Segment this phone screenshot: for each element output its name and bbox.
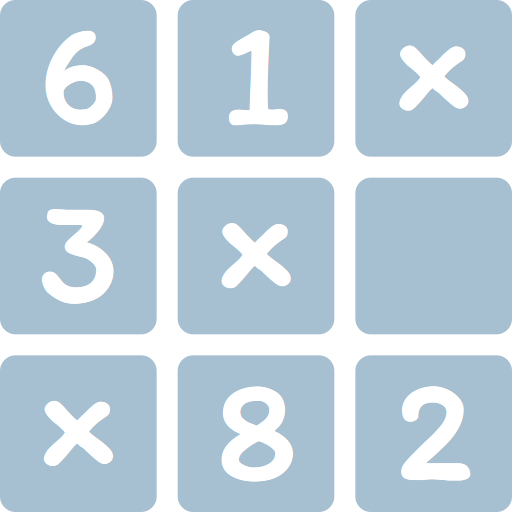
staticText: × bbox=[36, 311, 118, 512]
staticText: 6 bbox=[40, 0, 118, 161]
staticText: 3 bbox=[38, 163, 118, 339]
staticText: 6 bbox=[39, 0, 117, 161]
staticText: × bbox=[37, 311, 119, 512]
staticText: × bbox=[215, 133, 297, 334]
staticText: × bbox=[392, 0, 474, 158]
staticText: × bbox=[37, 310, 119, 512]
staticText: × bbox=[392, 0, 474, 157]
staticText: × bbox=[216, 134, 298, 335]
staticText: × bbox=[214, 134, 296, 335]
staticText: × bbox=[393, 0, 475, 157]
staticText: 2 bbox=[394, 340, 471, 512]
staticText: × bbox=[216, 134, 298, 336]
staticText: × bbox=[37, 312, 119, 512]
staticText: × bbox=[215, 135, 297, 336]
staticText: 2 bbox=[394, 339, 471, 512]
staticText: × bbox=[393, 0, 475, 159]
button[interactable]: 8 bbox=[178, 355, 334, 512]
staticText: 1 bbox=[222, 0, 290, 162]
staticText: 6 bbox=[40, 0, 118, 160]
staticText: × bbox=[215, 134, 297, 335]
staticText: × bbox=[37, 312, 119, 512]
staticText: 3 bbox=[39, 163, 119, 339]
staticText: 1 bbox=[223, 0, 291, 160]
staticText: 6 bbox=[39, 0, 117, 162]
staticText: 8 bbox=[216, 339, 296, 512]
staticText: 2 bbox=[395, 339, 472, 512]
staticText: × bbox=[214, 133, 296, 335]
staticText: × bbox=[393, 0, 475, 157]
staticText: × bbox=[38, 311, 120, 512]
staticText: 8 bbox=[215, 340, 295, 512]
staticText: 6 bbox=[38, 0, 116, 161]
staticText: 2 bbox=[396, 341, 473, 512]
button[interactable]: 3 bbox=[0, 178, 157, 334]
staticText: 8 bbox=[216, 341, 296, 512]
staticText: 1 bbox=[223, 0, 291, 161]
staticText: 8 bbox=[217, 339, 297, 512]
button[interactable]: Empty cell bbox=[355, 178, 512, 334]
staticText: 3 bbox=[38, 163, 118, 339]
staticText: × bbox=[37, 311, 119, 512]
staticText: 3 bbox=[38, 162, 118, 338]
button[interactable]: Clear bbox=[355, 0, 512, 157]
staticText: 2 bbox=[396, 340, 473, 512]
staticText: × bbox=[214, 134, 296, 336]
staticText: × bbox=[393, 0, 475, 158]
staticText: × bbox=[38, 312, 120, 512]
staticText: × bbox=[394, 0, 476, 158]
staticText: 6 bbox=[39, 0, 117, 161]
staticText: 1 bbox=[221, 0, 289, 161]
staticText: 6 bbox=[40, 0, 118, 161]
button[interactable]: 6 bbox=[0, 0, 157, 157]
staticText: 3 bbox=[38, 162, 118, 338]
staticText: × bbox=[38, 311, 120, 512]
staticText: 1 bbox=[222, 0, 290, 160]
staticText: 2 bbox=[394, 341, 471, 512]
staticText: × bbox=[392, 0, 474, 158]
staticText: 6 bbox=[39, 0, 117, 160]
staticText: 3 bbox=[38, 161, 118, 337]
staticText: 2 bbox=[395, 340, 472, 512]
staticText: 1 bbox=[221, 0, 289, 161]
staticText: 3 bbox=[39, 162, 119, 338]
staticText: 6 bbox=[39, 0, 117, 160]
staticText: 8 bbox=[215, 339, 295, 512]
staticText: 2 bbox=[395, 341, 472, 512]
button[interactable]: Clear bbox=[0, 355, 157, 512]
button[interactable]: 1 bbox=[178, 0, 334, 157]
staticText: 1 bbox=[223, 0, 291, 161]
staticText: × bbox=[216, 133, 298, 335]
staticText: 2 bbox=[396, 339, 473, 512]
button[interactable]: 2 bbox=[355, 355, 512, 512]
staticText: 3 bbox=[39, 162, 119, 338]
staticText: 8 bbox=[216, 340, 296, 512]
staticText: 8 bbox=[217, 341, 297, 512]
staticText: 8 bbox=[215, 341, 295, 512]
staticText: 3 bbox=[37, 162, 117, 338]
staticText: × bbox=[393, 0, 475, 158]
staticText: 1 bbox=[221, 0, 289, 160]
staticText: 8 bbox=[217, 340, 297, 512]
button[interactable]: Clear bbox=[178, 178, 334, 334]
staticText: 1 bbox=[222, 0, 290, 161]
